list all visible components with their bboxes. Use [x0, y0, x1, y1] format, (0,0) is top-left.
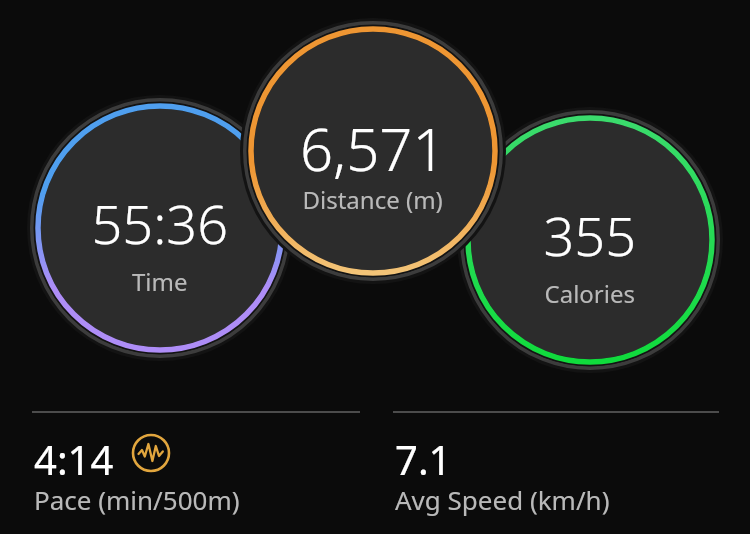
button[interactable]: Distance 6,571 m — [251, 29, 495, 273]
button[interactable]: Average speed 7.1 km/h — [393, 418, 719, 518]
button[interactable]: Time 55:36 — [38, 106, 282, 350]
button[interactable]: Calories 355 — [468, 118, 712, 362]
button[interactable]: Pace 4:14 min per 500 m — [32, 418, 360, 518]
